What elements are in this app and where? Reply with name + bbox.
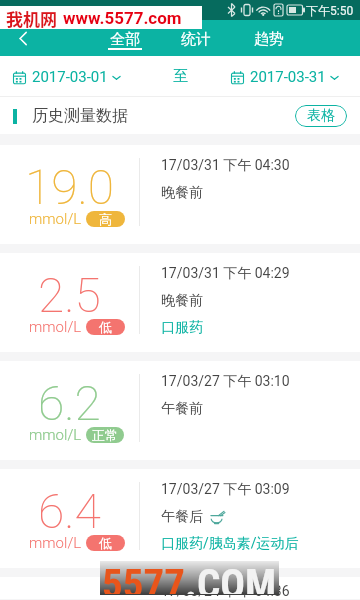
staticText: 全部 [110, 30, 140, 49]
staticText: 午餐前 [161, 400, 203, 418]
button[interactable]: 6.2 [0, 361, 360, 460]
button[interactable]: 全部 [99, 20, 151, 56]
button[interactable]: 19.0 [0, 145, 360, 244]
staticText: 口服药/胰岛素/运动后 [161, 535, 299, 553]
staticText: 晚餐前 [161, 184, 203, 202]
staticText: 口服药 [161, 319, 203, 337]
button[interactable]: 表格 [295, 105, 347, 127]
staticText: 5577 [102, 560, 185, 594]
staticText: mmol/L [29, 210, 82, 228]
staticText: 2017-03-31 [250, 68, 326, 86]
staticText: 我机网 [6, 6, 57, 29]
staticText: www.5577.com [63, 8, 182, 28]
staticText: 历史测量数据 [32, 106, 128, 126]
staticText: 趋势 [254, 30, 284, 49]
staticText: 19.0 [25, 159, 115, 215]
button[interactable]: 统计 [170, 20, 222, 56]
button[interactable]: 2017-03-01 [13, 68, 121, 86]
button[interactable]: 17/03/24 下午 04:36 [0, 577, 360, 599]
staticText: 17/03/31 下午 04:29 [161, 265, 290, 283]
staticText: 高 [99, 211, 112, 227]
staticText: 低 [99, 535, 112, 551]
staticText: 6.4 [38, 483, 101, 539]
button[interactable]: Back [0, 20, 46, 56]
staticText: 午餐后 [161, 508, 203, 526]
staticText: 晚餐前 [161, 292, 203, 310]
staticText: 17/03/31 下午 04:30 [161, 157, 290, 175]
staticText: mmol/L [29, 318, 82, 336]
staticText: 6.2 [38, 375, 101, 431]
staticText: 2.5 [38, 267, 101, 323]
staticText: 至 [173, 67, 188, 86]
staticText: mmol/L [29, 426, 82, 444]
staticText: 统计 [181, 30, 211, 49]
staticText: 正常 [92, 427, 118, 443]
button[interactable]: 2.5 [0, 253, 360, 352]
staticText: 低 [99, 319, 112, 335]
staticText: 17/03/24 下午 04:36 [161, 583, 290, 600]
staticText: 17/03/27 下午 03:10 [161, 373, 290, 391]
staticText: 下午5:50 [306, 3, 354, 18]
button[interactable]: 趋势 [243, 20, 295, 56]
staticText: .COM [185, 560, 277, 594]
staticText: 2017-03-01 [32, 68, 108, 86]
staticText: mmol/L [29, 534, 82, 552]
button[interactable]: 2017-03-31 [231, 68, 339, 86]
staticText: 表格 [307, 107, 335, 125]
staticText: 17/03/27 下午 03:09 [161, 481, 290, 499]
button[interactable]: 6.4 [0, 469, 360, 568]
